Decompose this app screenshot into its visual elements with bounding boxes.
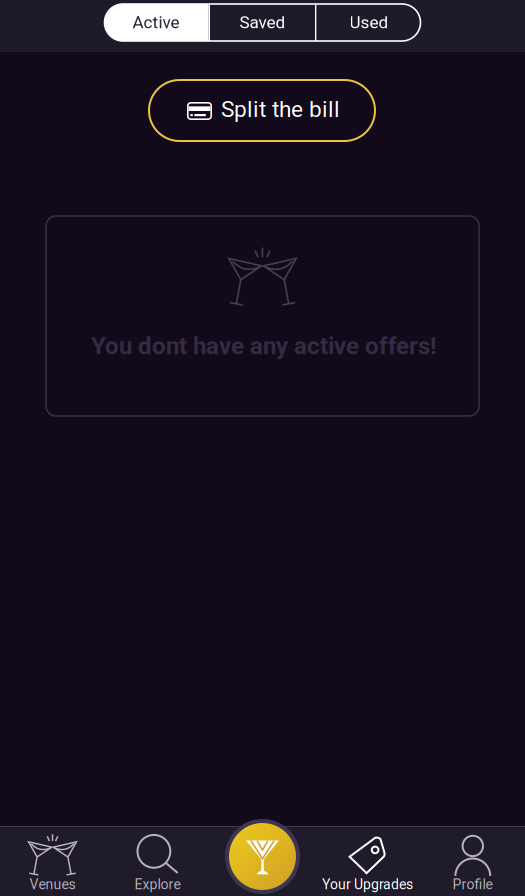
- button[interactable]: Saved: [210, 4, 315, 41]
- staticText: Split the bill: [221, 96, 340, 123]
- staticText: Saved: [239, 12, 285, 32]
- staticText: Explore: [134, 876, 180, 893]
- staticText: Your Upgrades: [322, 876, 413, 893]
- button[interactable]: Home: [225, 819, 300, 894]
- button[interactable]: Venues: [0, 827, 105, 896]
- staticText: Venues: [29, 876, 75, 893]
- button[interactable]: Explore: [105, 827, 210, 896]
- staticText: You dont have any active offers!: [91, 332, 436, 360]
- button[interactable]: Split the bill: [149, 80, 375, 141]
- button[interactable]: Profile: [420, 827, 525, 896]
- button[interactable]: Your Upgrades: [315, 827, 420, 896]
- button[interactable]: Active: [103, 4, 208, 41]
- staticText: Active: [132, 12, 179, 32]
- button[interactable]: [210, 827, 315, 896]
- staticText: Profile: [452, 876, 492, 893]
- button[interactable]: Used: [317, 4, 422, 41]
- staticText: Used: [350, 12, 389, 32]
